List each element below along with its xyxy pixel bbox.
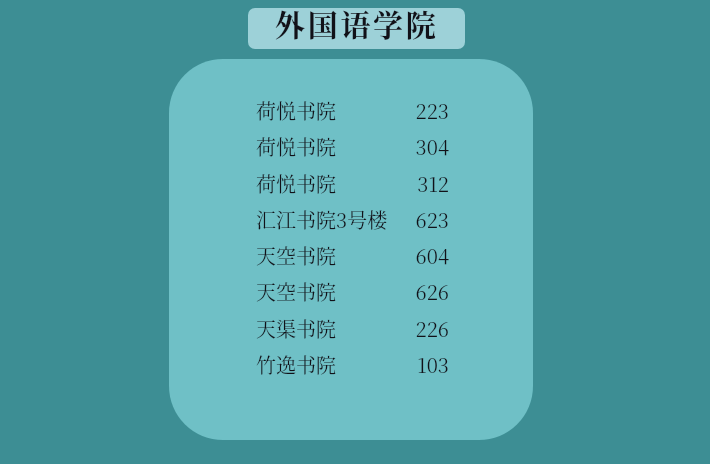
staticText: 103 — [337, 350, 449, 379]
button[interactable]: 天空书院 — [256, 237, 449, 273]
staticText: 竹逸书院 — [256, 350, 336, 379]
staticText: 312 — [337, 169, 449, 198]
button[interactable]: 竹逸书院 — [256, 346, 449, 382]
staticText: 汇江书院3号楼 — [256, 205, 388, 234]
button[interactable]: 天渠书院 — [256, 310, 449, 346]
staticText: 外国语学院 — [275, 8, 439, 42]
staticText: 天空书院 — [256, 241, 336, 270]
staticText: 223 — [337, 96, 449, 125]
staticText: 623 — [389, 205, 449, 234]
staticText: 604 — [337, 241, 449, 270]
button[interactable]: 荷悦书院 — [256, 92, 449, 128]
staticText: 荷悦书院 — [256, 96, 336, 125]
button[interactable]: 汇江书院3号楼 — [256, 201, 449, 237]
staticText: 626 — [337, 277, 449, 306]
button[interactable]: 天空书院 — [256, 273, 449, 309]
staticText: 304 — [337, 132, 449, 161]
staticText: 天渠书院 — [256, 314, 336, 343]
staticText: 荷悦书院 — [256, 169, 336, 198]
button[interactable]: 荷悦书院 — [256, 128, 449, 164]
staticText: 226 — [337, 314, 449, 343]
button[interactable]: 荷悦书院 — [256, 165, 449, 201]
other: 宿舍列表 — [169, 59, 533, 440]
button[interactable]: 外国语学院 — [248, 8, 465, 49]
staticText: 天空书院 — [256, 277, 336, 306]
staticText: 荷悦书院 — [256, 132, 336, 161]
